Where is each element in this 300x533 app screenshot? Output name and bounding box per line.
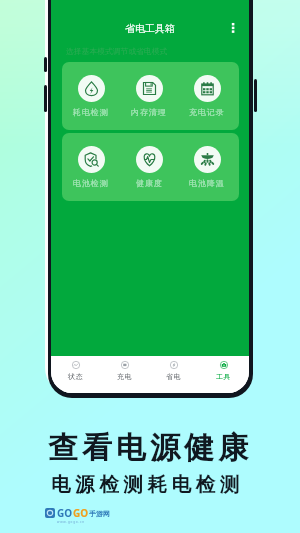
- button[interactable]: 内存清理: [120, 62, 178, 130]
- staticText: GO: [73, 506, 89, 520]
- staticText: 健康度: [136, 178, 163, 188]
- button[interactable]: 充电: [100, 356, 149, 393]
- staticText: 耗电检测: [73, 107, 109, 117]
- button[interactable]: 工具: [199, 356, 249, 393]
- button[interactable]: 电池检测: [62, 133, 120, 201]
- button[interactable]: 省电: [149, 356, 199, 393]
- staticText: 状态: [68, 372, 84, 381]
- staticText: w w w . g o g o . c n: [57, 520, 85, 524]
- staticText: 充电记录: [189, 107, 225, 117]
- button[interactable]: 健康度: [120, 133, 178, 201]
- staticText: 电池降温: [189, 178, 225, 188]
- button[interactable]: 状态: [51, 356, 100, 393]
- staticText: 内存清理: [131, 107, 167, 117]
- staticText: 电池检测: [73, 178, 109, 188]
- staticText: 电源检测耗电检测: [51, 472, 244, 497]
- button[interactable]: 耗电检测: [62, 62, 120, 130]
- staticText: 手游网: [89, 509, 110, 518]
- staticText: 省电: [166, 372, 182, 381]
- button[interactable]: 充电记录: [178, 62, 236, 130]
- staticText: 查看电源健康: [46, 429, 250, 467]
- button[interactable]: More options: [224, 19, 242, 37]
- button[interactable]: 电池降温: [178, 133, 236, 201]
- staticText: 充电: [117, 372, 133, 381]
- staticText: 选择基本模式调节或省电模式: [66, 46, 168, 56]
- staticText: 工具: [216, 372, 232, 381]
- staticText: 省电工具箱: [125, 22, 175, 35]
- staticText: GO: [57, 506, 73, 520]
